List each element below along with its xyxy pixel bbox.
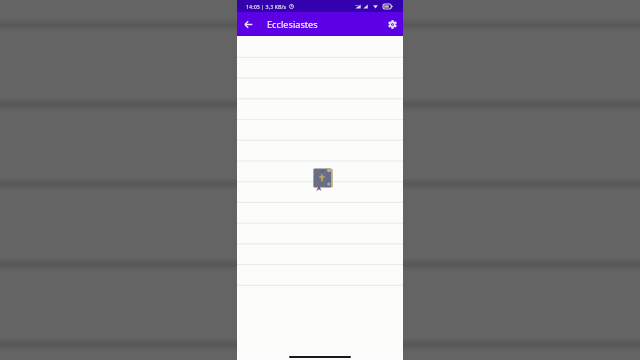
- staticText: 14:05 | 3,3 KB/s: [246, 3, 287, 10]
- button[interactable]: Chapter 11: [237, 246, 403, 267]
- button[interactable]: Settings: [384, 16, 401, 33]
- button[interactable]: Chapter 7: [237, 162, 403, 183]
- button[interactable]: Chapter 9: [237, 204, 403, 225]
- button[interactable]: Chapter 2: [237, 57, 403, 78]
- button[interactable]: Chapter 10: [237, 225, 403, 246]
- staticText: Ecclesiastes: [267, 18, 318, 31]
- button[interactable]: Back: [240, 16, 257, 33]
- button[interactable]: Chapter 6: [237, 141, 403, 162]
- button[interactable]: Chapter 4: [237, 99, 403, 120]
- button[interactable]: Chapter 3: [237, 78, 403, 99]
- button[interactable]: Chapter 8: [237, 183, 403, 204]
- other: Bible: [313, 168, 333, 191]
- button[interactable]: Chapter 12: [237, 267, 403, 288]
- button[interactable]: Chapter 5: [237, 120, 403, 141]
